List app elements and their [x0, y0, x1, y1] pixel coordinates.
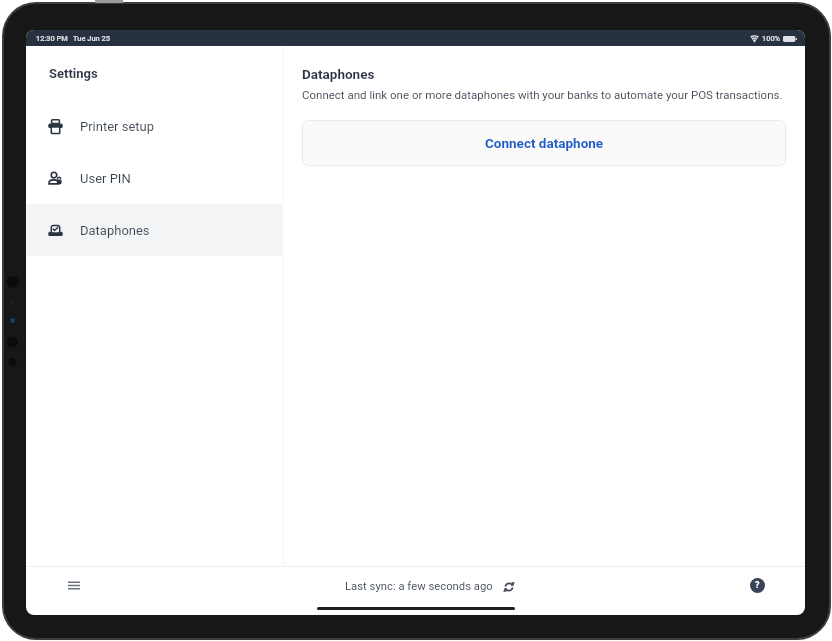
staticText: ?	[755, 580, 760, 591]
staticText: Connect dataphone	[485, 135, 604, 151]
button[interactable]: Menu	[60, 571, 88, 599]
button[interactable]: Connect dataphone	[302, 120, 786, 166]
button[interactable]: Dataphones	[26, 204, 282, 256]
staticText: 100%	[762, 34, 781, 43]
staticText: Settings	[49, 66, 98, 81]
button[interactable]: Printer setup	[26, 100, 282, 152]
staticText: Dataphones	[80, 223, 150, 238]
button[interactable]: Last sync: a few seconds ago	[345, 580, 515, 593]
staticText: Dataphones	[302, 66, 375, 82]
staticText: Last sync: a few seconds ago	[345, 580, 493, 593]
staticText: User PIN	[80, 171, 131, 186]
staticText: Printer setup	[80, 119, 155, 134]
staticText: 12:30 PM Tue Jun 25	[36, 34, 110, 43]
button[interactable]: User PIN	[26, 152, 282, 204]
button[interactable]: Help	[744, 572, 770, 598]
staticText: Connect and link one or more dataphones …	[302, 88, 783, 101]
